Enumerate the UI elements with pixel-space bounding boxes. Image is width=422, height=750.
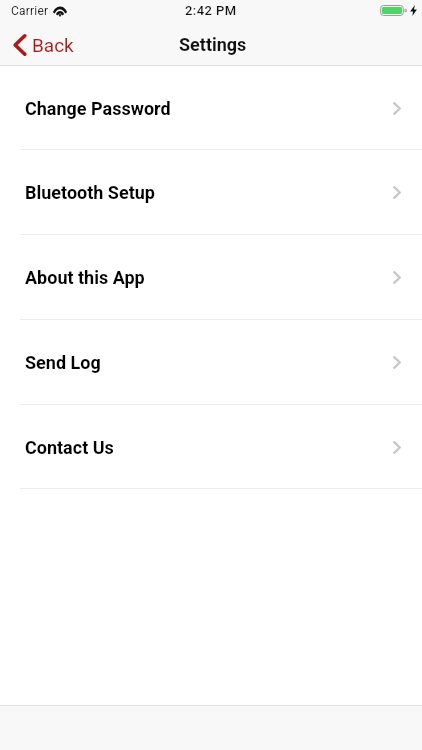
button[interactable]: Change Password [0, 66, 422, 150]
staticText: 2:42 PM [185, 3, 237, 18]
staticText: Back [32, 34, 74, 56]
button[interactable]: Bluetooth Setup [0, 150, 422, 235]
button[interactable]: About this App [0, 235, 422, 320]
staticText: Change Password [25, 98, 171, 119]
staticText: About this App [25, 267, 145, 288]
button[interactable]: Contact Us [0, 405, 422, 489]
staticText: Settings [179, 34, 247, 55]
staticText: Contact Us [25, 437, 114, 458]
staticText: Carrier [11, 4, 49, 18]
staticText: Send Log [25, 352, 101, 373]
button[interactable]: Back [1, 28, 86, 62]
staticText: Bluetooth Setup [25, 182, 155, 203]
button[interactable]: Send Log [0, 320, 422, 405]
